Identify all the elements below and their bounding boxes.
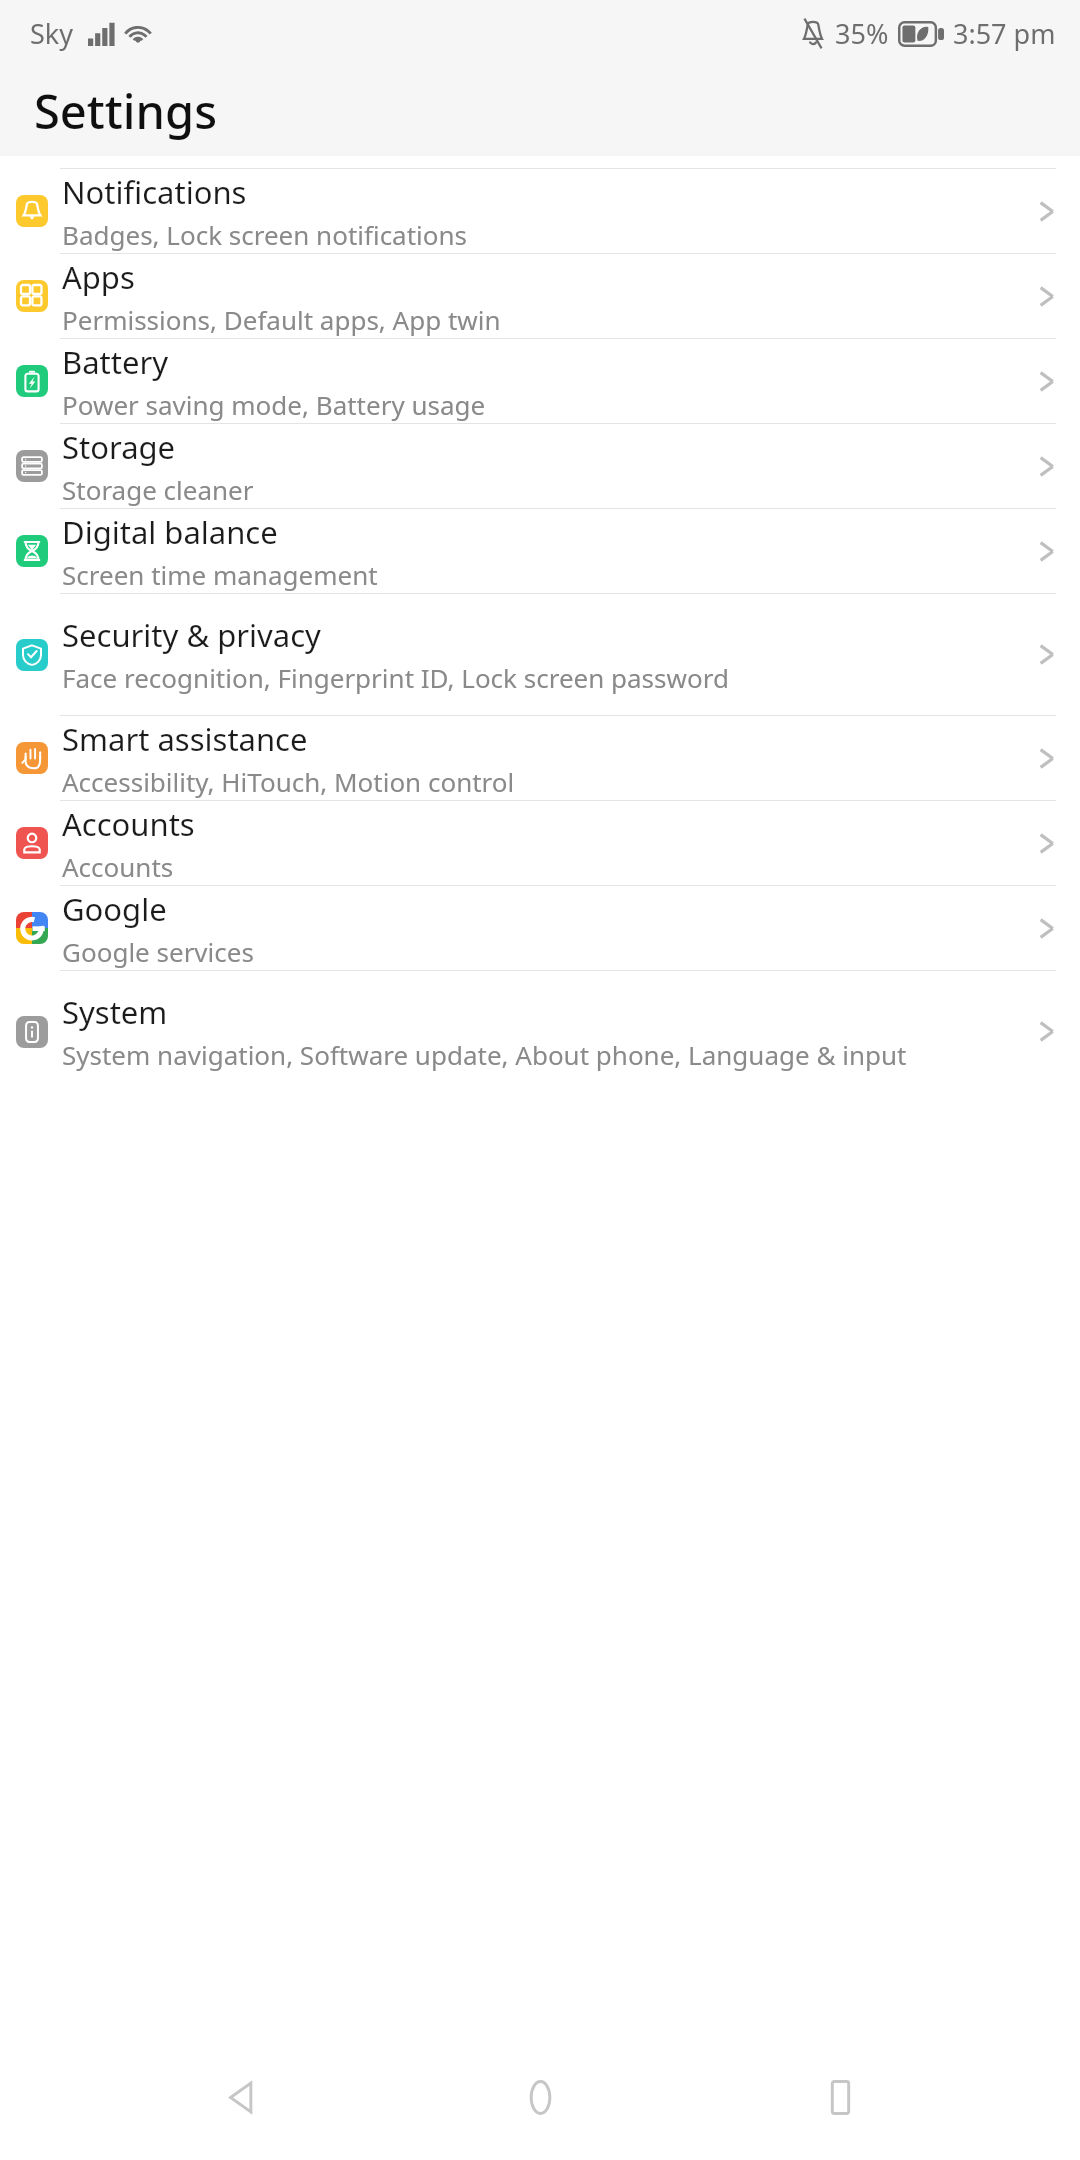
staticText: Battery <box>62 341 169 383</box>
staticText: Storage <box>62 426 176 468</box>
button[interactable]: Accounts <box>0 801 1080 885</box>
button[interactable]: Recent apps <box>781 2038 899 2156</box>
other: Security & privacy <box>1036 638 1057 671</box>
staticText: System <box>62 991 168 1033</box>
other: Digital balance <box>1036 535 1057 568</box>
button[interactable]: System <box>0 971 1080 1092</box>
staticText: 35% <box>835 15 889 52</box>
button[interactable]: Security & privacy <box>0 594 1080 715</box>
staticText: Apps <box>62 256 135 298</box>
staticText: Sky <box>30 15 74 52</box>
button[interactable]: Battery <box>0 339 1080 423</box>
other: System <box>1036 1015 1057 1048</box>
other: Battery <box>1036 365 1057 398</box>
button[interactable]: Smart assistance <box>0 716 1080 800</box>
staticText: Badges, Lock screen notifications <box>62 217 468 252</box>
staticText: Notifications <box>62 171 247 213</box>
staticText: Accessibility, HiTouch, Motion control <box>62 764 515 799</box>
staticText: Screen time management <box>62 557 378 592</box>
staticText: Security & privacy <box>62 614 321 656</box>
staticText: Smart assistance <box>62 718 308 760</box>
staticText: Power saving mode, Battery usage <box>62 387 486 422</box>
staticText: Google services <box>62 934 254 969</box>
other: Storage <box>1036 450 1057 483</box>
staticText: Accounts <box>62 803 195 845</box>
staticText: Google <box>62 888 167 930</box>
other: Accounts <box>1036 827 1057 860</box>
button[interactable]: Back <box>182 2038 300 2156</box>
button[interactable]: Notifications <box>0 169 1080 253</box>
staticText: 3:57 pm <box>953 15 1056 52</box>
button[interactable]: Digital balance <box>0 509 1080 593</box>
button[interactable]: Apps <box>0 254 1080 338</box>
other: Smart assistance <box>1036 742 1057 775</box>
button[interactable]: Storage <box>0 424 1080 508</box>
other: Apps <box>1036 280 1057 313</box>
staticText: System navigation, Software update, Abou… <box>62 1037 907 1072</box>
staticText: Digital balance <box>62 511 278 553</box>
staticText: Settings <box>34 79 217 143</box>
other: Notifications <box>1036 195 1057 228</box>
staticText: Face recognition, Fingerprint ID, Lock s… <box>62 660 729 695</box>
staticText: Accounts <box>62 849 174 884</box>
other: Google <box>1036 912 1057 945</box>
staticText: Storage cleaner <box>62 472 254 507</box>
staticText: Permissions, Default apps, App twin <box>62 302 501 337</box>
button[interactable]: Home <box>481 2038 599 2156</box>
button[interactable]: Google <box>0 886 1080 970</box>
